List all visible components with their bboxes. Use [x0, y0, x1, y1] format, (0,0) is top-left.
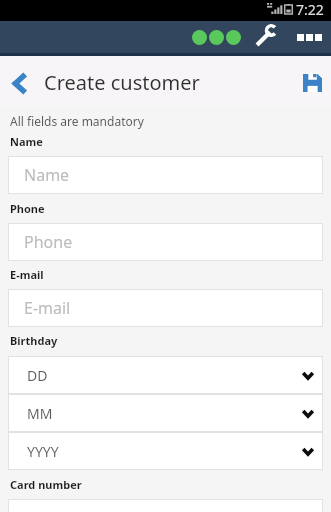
button[interactable] — [8, 499, 323, 512]
button[interactable]: More options — [294, 31, 325, 44]
staticText: Phone — [24, 231, 73, 253]
button[interactable]: Settings — [253, 22, 280, 49]
staticText: Birthday — [10, 333, 58, 348]
staticText: E-mail — [24, 297, 71, 319]
staticText: Name — [10, 134, 43, 149]
staticText: Create customer — [44, 69, 200, 96]
button[interactable]: Save — [291, 56, 331, 108]
button[interactable]: DD — [8, 356, 323, 394]
staticText: YYYY — [27, 442, 59, 461]
staticText: DD — [27, 366, 48, 385]
staticText: 7:22 — [296, 0, 324, 19]
staticText: Name — [24, 164, 70, 186]
button[interactable]: E-mail — [8, 289, 323, 327]
button[interactable]: Sync status — [190, 28, 243, 47]
staticText: Card number — [10, 477, 82, 492]
staticText: Phone — [10, 201, 45, 216]
button[interactable]: Name — [8, 156, 323, 194]
staticText: MM — [27, 404, 53, 423]
button[interactable]: Back — [0, 56, 40, 108]
button[interactable]: Phone — [8, 223, 323, 261]
staticText: All fields are mandatory — [10, 113, 144, 129]
button[interactable]: YYYY — [8, 432, 323, 470]
button[interactable]: MM — [8, 394, 323, 432]
staticText: E-mail — [10, 267, 44, 282]
